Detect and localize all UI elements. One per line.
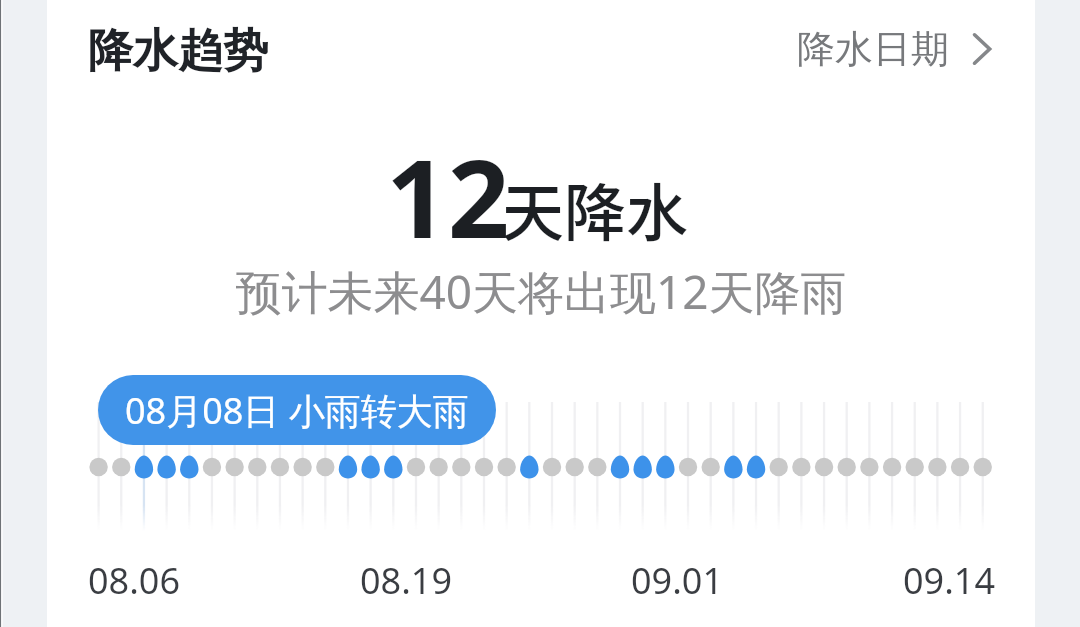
staticText: 08.19 <box>360 556 453 605</box>
staticText: 08月08日 小雨转大雨 <box>125 386 469 435</box>
staticText: 天降水 <box>502 164 689 254</box>
staticText: 预计未来40天将出现12天降雨 <box>235 260 847 323</box>
staticText: 09.14 <box>903 556 996 605</box>
staticText: 09.01 <box>631 556 724 605</box>
staticText: 12 <box>386 123 510 270</box>
staticText: 降水日期 <box>797 25 949 73</box>
staticText: 降水趋势 <box>88 23 268 80</box>
staticText: 08.06 <box>88 556 181 605</box>
button[interactable]: 08月08日 小雨转大雨 <box>98 375 496 445</box>
button[interactable]: 降水日期 <box>797 25 993 73</box>
